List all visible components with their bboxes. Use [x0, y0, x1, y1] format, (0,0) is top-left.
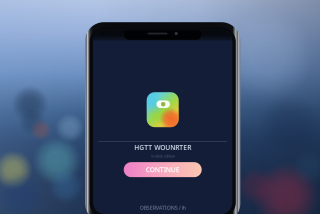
staticText: OBSERVATIONS / ih [140, 204, 186, 211]
staticText: CONTINUE [146, 165, 180, 174]
button[interactable]: CONTINUE [124, 162, 202, 177]
staticText: HGTT WOUNRTER [134, 143, 191, 152]
staticText: mobile edition [151, 153, 175, 159]
